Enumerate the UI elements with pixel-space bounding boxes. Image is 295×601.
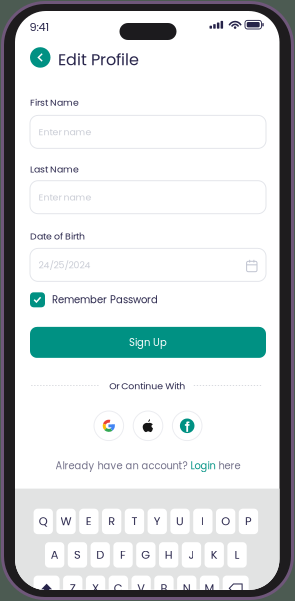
staticText: Q (39, 513, 48, 529)
button[interactable]: T (125, 509, 144, 534)
button[interactable]: H (159, 542, 178, 568)
staticText: E (86, 513, 92, 529)
staticText: F (120, 547, 126, 563)
staticText: Z (70, 580, 76, 596)
staticText: X (92, 580, 99, 596)
button[interactable]: Continue with Apple (133, 411, 163, 441)
button[interactable]: A (45, 542, 64, 568)
staticText: Or Continue With (109, 379, 185, 392)
staticText: Remember Password (52, 293, 158, 307)
button[interactable]: I (193, 509, 212, 534)
staticText: T (131, 513, 137, 529)
button[interactable]: R (102, 509, 121, 534)
staticText: R (108, 513, 115, 529)
staticText: I (201, 513, 204, 529)
button[interactable]: Enter name (30, 115, 266, 148)
button[interactable]: Y (148, 509, 167, 534)
staticText: First Name (30, 96, 79, 109)
button[interactable]: P (239, 509, 258, 534)
staticText: C (114, 580, 123, 596)
button[interactable]: D (91, 542, 110, 568)
button[interactable]: M (200, 576, 219, 601)
button[interactable]: F (113, 542, 133, 568)
button[interactable]: 24/25/2024 (30, 248, 266, 281)
button[interactable]: Already have an account? (30, 459, 266, 473)
staticText: G (141, 547, 150, 563)
button[interactable]: B (154, 576, 174, 601)
button[interactable]: Continue with Google (94, 411, 124, 441)
staticText: V (137, 580, 145, 596)
staticText: 9:41 (29, 19, 49, 35)
staticText: Sign Up (129, 335, 167, 349)
staticText: D (96, 547, 104, 563)
staticText: here (215, 459, 240, 473)
staticText: Enter name (38, 125, 91, 138)
button[interactable]: K (205, 542, 224, 568)
button[interactable]: S (68, 542, 87, 568)
staticText: W (61, 513, 72, 529)
staticText: Login (190, 459, 215, 473)
staticText: N (183, 580, 191, 596)
button[interactable]: Delete (223, 576, 249, 601)
button[interactable]: Continue with Facebook (172, 411, 202, 441)
staticText: Already have an account? (55, 459, 190, 473)
button[interactable]: N (177, 576, 196, 601)
button[interactable]: E (79, 509, 98, 534)
staticText: M (205, 580, 215, 596)
staticText: J (188, 547, 194, 563)
button[interactable]: J (182, 542, 201, 568)
staticText: A (51, 547, 59, 563)
button[interactable]: Shift (34, 576, 60, 601)
staticText: Edit Profile (58, 48, 139, 71)
staticText: H (165, 547, 173, 563)
staticText: K (211, 547, 218, 563)
button[interactable]: Sign Up (30, 327, 266, 358)
staticText: Enter name (38, 191, 91, 204)
staticText: Last Name (30, 163, 79, 176)
staticText: 24/25/2024 (38, 258, 90, 271)
button[interactable]: O (216, 509, 235, 534)
button[interactable]: G (136, 542, 155, 568)
button[interactable]: V (131, 576, 151, 601)
button[interactable]: Q (34, 509, 53, 534)
staticText: S (74, 547, 81, 563)
staticText: U (176, 513, 184, 529)
staticText: Y (154, 513, 161, 529)
staticText: P (245, 513, 252, 529)
staticText: O (221, 513, 230, 529)
staticText: L (235, 547, 240, 563)
button[interactable]: Z (63, 576, 82, 601)
button[interactable]: U (170, 509, 190, 534)
button[interactable]: L (227, 542, 247, 568)
button[interactable]: Remember Password (30, 292, 158, 307)
button[interactable]: Back (30, 47, 50, 68)
staticText: Date of Birth (30, 230, 85, 243)
staticText: B (160, 580, 167, 596)
button[interactable]: W (56, 509, 76, 534)
button[interactable]: X (86, 576, 105, 601)
button[interactable]: Enter name (30, 181, 266, 214)
button[interactable]: C (109, 576, 128, 601)
